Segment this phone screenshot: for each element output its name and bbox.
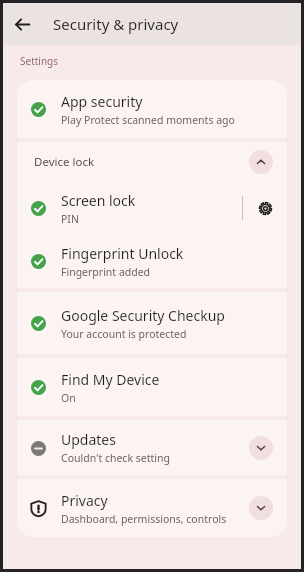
button[interactable]: Collapse Device lock (249, 150, 273, 174)
button[interactable]: Fingerprint Unlock (17, 234, 287, 288)
button[interactable]: Expand Updates (249, 436, 273, 460)
button[interactable]: Updates (17, 420, 287, 475)
button[interactable]: Google Security Checkup (17, 292, 287, 354)
button[interactable]: Back (3, 5, 41, 43)
button[interactable]: Privacy (17, 479, 287, 537)
button[interactable]: Screen lock settings (243, 186, 287, 230)
staticText: Settings (20, 54, 59, 68)
button[interactable]: Expand Privacy (249, 496, 273, 520)
staticText: Couldn't check setting (61, 451, 170, 465)
staticText: Dashboard, permissions, controls (61, 512, 227, 526)
staticText: PIN (61, 212, 79, 226)
staticText: Device lock (34, 154, 249, 170)
button[interactable]: Screen lock (17, 182, 242, 234)
staticText: Fingerprint added (61, 265, 151, 279)
staticText: Screen lock (61, 191, 136, 210)
staticText: Fingerprint Unlock (61, 244, 184, 263)
button[interactable]: Find My Device (17, 358, 287, 416)
staticText: Google Security Checkup (61, 306, 225, 325)
staticText: Play Protect scanned moments ago (61, 113, 235, 127)
staticText: On (61, 391, 76, 405)
button[interactable]: Device lock (17, 142, 287, 182)
staticText: Find My Device (61, 370, 160, 389)
staticText: Your account is protected (61, 327, 187, 341)
staticText: App security (61, 92, 143, 111)
staticText: Updates (61, 430, 116, 449)
staticText: Privacy (61, 491, 108, 510)
staticText: Security & privacy (53, 14, 179, 34)
button[interactable]: App security (17, 80, 287, 138)
